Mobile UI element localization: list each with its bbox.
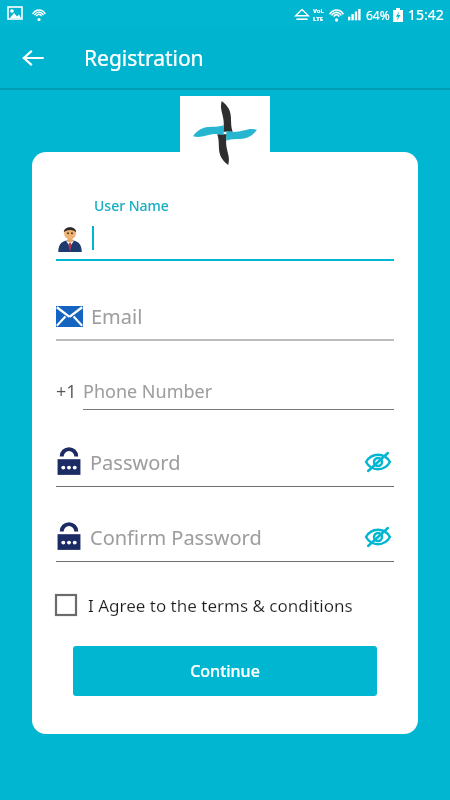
staticText: Continue <box>190 660 260 682</box>
staticText: I Agree to the terms & conditions <box>88 594 353 617</box>
staticText: Email <box>91 303 143 330</box>
staticText: Confirm Password <box>90 524 262 551</box>
button[interactable]: Show password <box>362 446 394 478</box>
button[interactable]: Continue <box>73 646 377 696</box>
button[interactable]: Password <box>56 444 394 480</box>
staticText: Password <box>90 449 181 476</box>
button[interactable]: Back <box>10 35 56 81</box>
staticText: User Name <box>94 196 169 215</box>
button[interactable]: Show password <box>362 521 394 553</box>
button[interactable]: +1 <box>56 379 394 410</box>
staticText: Phone Number <box>83 379 213 404</box>
button[interactable] <box>56 221 394 255</box>
button[interactable]: Email <box>56 299 394 333</box>
staticText: 15:42 <box>408 5 444 24</box>
staticText: +1 <box>56 379 77 404</box>
staticText: 64% <box>366 7 390 23</box>
staticText: Registration <box>84 44 204 73</box>
staticText: VoL <box>313 7 324 15</box>
button[interactable]: Confirm Password <box>56 519 394 555</box>
button[interactable]: I Agree to the terms & conditions <box>56 586 394 624</box>
staticText: LTE <box>313 15 324 23</box>
